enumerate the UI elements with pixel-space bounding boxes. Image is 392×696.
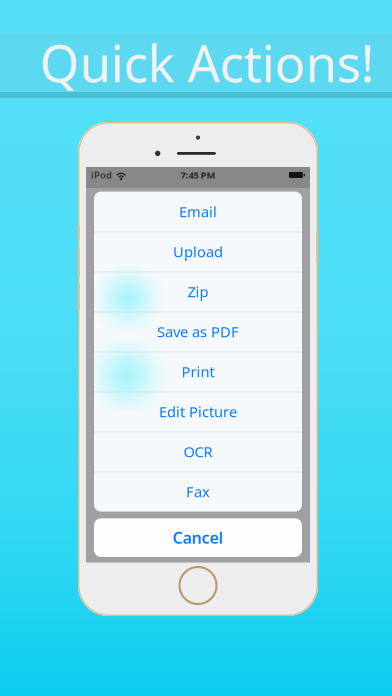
button[interactable]: Zip	[94, 272, 302, 312]
staticText: iPod	[91, 169, 112, 181]
staticText: Save as PDF	[157, 322, 239, 341]
staticText: 7:45 PM	[180, 169, 215, 181]
button[interactable]: Upload	[94, 232, 302, 272]
staticText: Upload	[173, 242, 223, 261]
staticText: Fax	[186, 482, 210, 501]
staticText: Cancel	[172, 527, 223, 548]
staticText: Print	[181, 362, 214, 381]
button[interactable]: Email	[94, 192, 302, 232]
staticText: OCR	[183, 442, 212, 461]
staticText: Zip	[187, 282, 208, 301]
button[interactable]: Cancel	[94, 518, 302, 557]
button[interactable]: Print	[94, 352, 302, 392]
button[interactable]: Edit Picture	[94, 392, 302, 432]
staticText: Email	[179, 202, 217, 221]
button[interactable]: Save as PDF	[94, 312, 302, 352]
button[interactable]: OCR	[94, 432, 302, 472]
staticText: Quick Actions!	[39, 29, 374, 96]
button[interactable]: Fax	[94, 472, 302, 512]
staticText: Edit Picture	[159, 402, 237, 421]
